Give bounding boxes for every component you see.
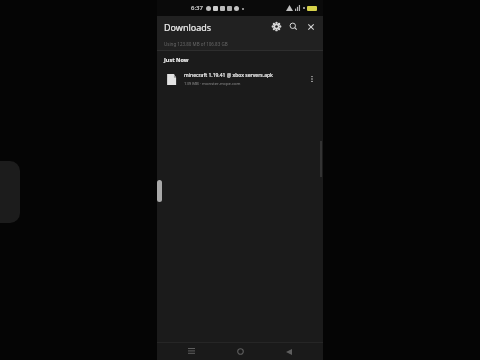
button[interactable]: minecraft 1.19.41 @ xbox servers.apk (157, 67, 323, 91)
button[interactable]: Search (285, 18, 302, 35)
staticText: 139 MB · monster-mcpe.com (184, 81, 241, 87)
staticText: minecraft 1.19.41 @ xbox servers.apk (184, 72, 273, 79)
button[interactable]: Close (302, 18, 319, 35)
staticText: 6:37 (191, 4, 203, 12)
button[interactable]: Back (274, 343, 304, 360)
staticText: Downloads (164, 21, 212, 33)
button[interactable]: Recents (176, 343, 206, 360)
button[interactable]: Settings (268, 18, 285, 35)
button[interactable]: More options (303, 70, 321, 88)
button[interactable]: Home (225, 343, 255, 360)
staticText: Just Now (164, 56, 189, 63)
staticText: Using 123.80 MB of 106.83 GB (164, 41, 228, 47)
